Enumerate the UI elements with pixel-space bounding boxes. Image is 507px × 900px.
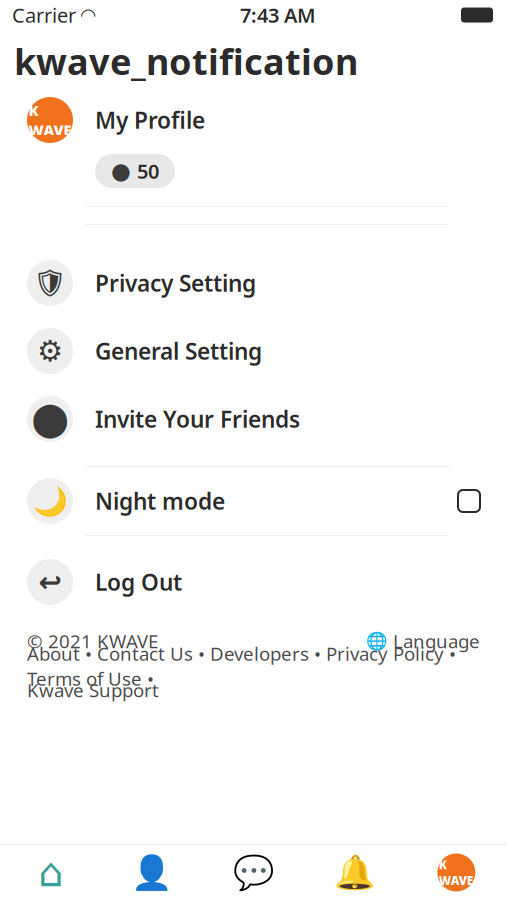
staticText: ⌂ [38, 850, 63, 895]
staticText: 50 [137, 158, 159, 184]
staticText: 👤 [131, 853, 173, 892]
button[interactable]: 🛡 [0, 249, 507, 317]
button[interactable]: ⬤ [0, 385, 507, 453]
staticText: ◠ [81, 4, 95, 26]
staticText: General Setting [95, 336, 262, 366]
staticText: Carrier [12, 2, 76, 28]
button[interactable]: ● [95, 154, 175, 188]
button[interactable]: ↩ [0, 548, 507, 616]
button[interactable]: Notifications [304, 845, 406, 900]
button[interactable]: KWAVE [406, 845, 507, 900]
staticText: 💬 [232, 853, 274, 892]
staticText: My Profile [95, 105, 205, 135]
staticText: Log Out [95, 567, 182, 597]
staticText: ↩ [38, 566, 61, 598]
staticText: ● [111, 158, 131, 184]
button[interactable]: Home [0, 845, 101, 900]
staticText: Invite Your Friends [95, 404, 300, 434]
staticText: ⚙ [37, 334, 63, 368]
button[interactable]: ⚙ [0, 317, 507, 385]
staticText: 🌐 [366, 631, 388, 651]
staticText: K WAVE [28, 100, 71, 139]
staticText: 🛡 [33, 268, 67, 298]
staticText: K WAVE [439, 857, 474, 888]
button[interactable]: Messages [203, 845, 304, 900]
staticText: Kwave Support [27, 678, 159, 702]
staticText: Language [393, 629, 480, 653]
staticText: kwave_notification [14, 37, 358, 85]
staticText: 🔔 [334, 853, 376, 892]
staticText: © 2021 KWAVE [27, 629, 158, 653]
button[interactable]: 🌙 [0, 467, 507, 535]
staticText: Night mode [95, 486, 225, 516]
staticText: ⬤ [31, 400, 68, 438]
button[interactable]: 🌐 [366, 629, 480, 653]
staticText: 🌙 [32, 485, 67, 517]
staticText: About • Contact Us • Developers • Privac… [27, 641, 456, 691]
button[interactable]: K WAVE [0, 92, 507, 148]
staticText: Privacy Setting [95, 268, 256, 298]
button[interactable]: Add Friend [101, 845, 203, 900]
staticText: 7:43 AM [240, 2, 316, 28]
